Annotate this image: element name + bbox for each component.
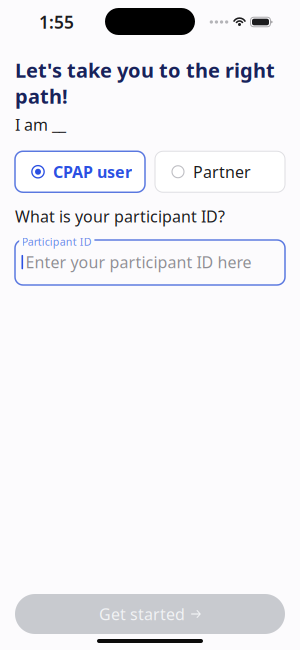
button[interactable]: Partner — [155, 151, 285, 192]
staticText: 1:55 — [39, 10, 74, 33]
button[interactable]: CPAP user — [15, 151, 145, 192]
staticText: Let's take you to the right — [15, 57, 275, 83]
staticText: Get started — [99, 603, 185, 625]
button[interactable]: Get started — [15, 594, 285, 634]
staticText: Enter your participant ID here — [26, 251, 252, 273]
staticText: path! — [15, 83, 68, 109]
staticText: I am __ — [15, 114, 66, 135]
staticText: CPAP user — [53, 161, 132, 182]
staticText: What is your participant ID? — [15, 206, 225, 227]
staticText: Participant ID — [22, 234, 92, 249]
staticText: Partner — [193, 161, 251, 182]
